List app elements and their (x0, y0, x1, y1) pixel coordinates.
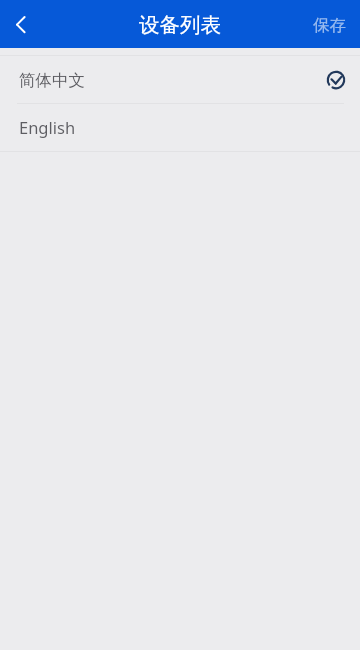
button[interactable]: 简体中文 (0, 56, 360, 103)
button[interactable]: English (0, 104, 360, 151)
staticText: 保存 (313, 15, 346, 36)
button[interactable]: Back (0, 2, 44, 46)
staticText: 设备列表 (139, 12, 221, 38)
staticText: 简体中文 (19, 70, 85, 91)
staticText: English (19, 116, 76, 138)
other: Selected (327, 71, 345, 89)
button[interactable]: 保存 (297, 0, 360, 48)
